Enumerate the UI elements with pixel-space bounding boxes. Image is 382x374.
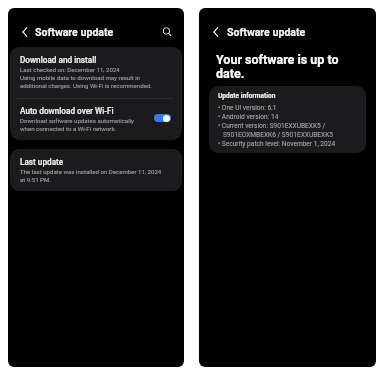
staticText: Last update xyxy=(20,157,64,167)
button[interactable]: Auto download over Wi-Fi xyxy=(154,114,171,122)
button[interactable]: Search xyxy=(158,23,176,41)
staticText: Download and install xyxy=(20,55,97,65)
button[interactable]: Download and install xyxy=(10,47,182,98)
staticText: • One UI version: 6.1 • Android version:… xyxy=(218,103,336,148)
button[interactable]: Auto download over Wi-Fi xyxy=(10,99,182,140)
button[interactable]: Last update xyxy=(10,149,182,191)
button[interactable]: Back xyxy=(208,24,223,39)
button[interactable]: Update information xyxy=(209,86,366,153)
staticText: Your software is up to date. xyxy=(216,53,352,81)
staticText: Last checked on: December 11, 2024 Using… xyxy=(20,66,160,90)
staticText: Auto download over Wi-Fi xyxy=(20,106,114,116)
staticText: Software update xyxy=(35,26,114,38)
staticText: The last update was installed on Decembe… xyxy=(20,168,165,184)
button[interactable]: Back xyxy=(17,24,32,39)
staticText: Software update xyxy=(227,26,306,38)
staticText: Download software updates automatically … xyxy=(20,117,142,133)
staticText: Update information xyxy=(218,92,276,100)
